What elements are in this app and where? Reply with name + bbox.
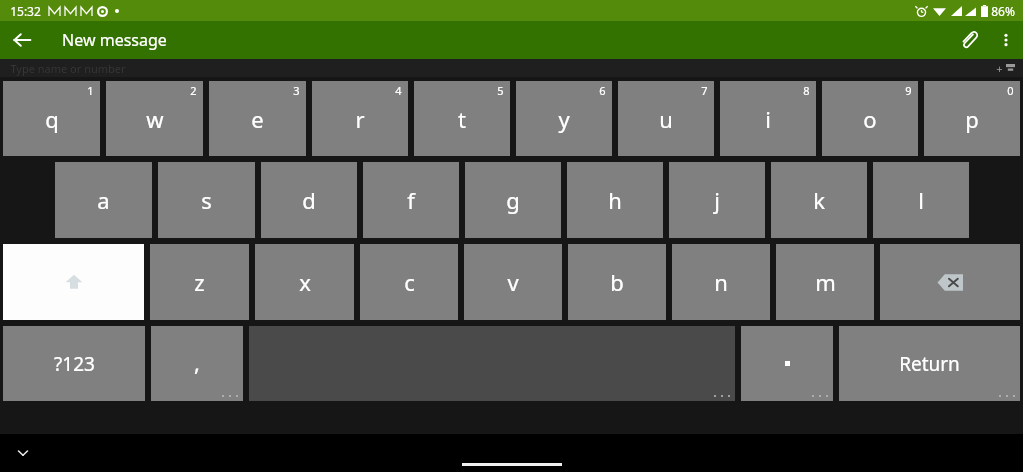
button[interactable]: Shift (3, 244, 144, 320)
button[interactable]: m (776, 244, 874, 320)
staticText: w (146, 104, 164, 134)
staticText: 6 (599, 83, 606, 98)
staticText: + (996, 61, 1003, 76)
button[interactable]: o (822, 81, 918, 156)
staticText: t (458, 104, 466, 134)
button[interactable]: Attach (949, 21, 989, 59)
button[interactable]: a (55, 162, 152, 238)
staticText: z (194, 267, 205, 297)
button[interactable]: k (771, 162, 867, 238)
staticText: 8 (803, 83, 810, 98)
button[interactable]: Backspace (880, 244, 1020, 320)
button[interactable]: c (360, 244, 458, 320)
button[interactable]: u (618, 81, 714, 156)
button[interactable]: Comma (151, 326, 243, 401)
button[interactable]: f (363, 162, 459, 238)
staticText: 7 (701, 83, 708, 98)
button[interactable]: h (567, 162, 663, 238)
staticText: q (45, 104, 59, 134)
staticText: m (815, 267, 836, 297)
staticText: p (965, 104, 979, 134)
staticText: 5 (497, 83, 504, 98)
staticText: s (201, 185, 212, 215)
staticText: a (97, 185, 110, 215)
staticText: c (404, 267, 415, 297)
staticText: d (302, 185, 316, 215)
staticText: e (251, 104, 264, 134)
button[interactable]: y (516, 81, 612, 156)
button[interactable]: l (873, 162, 969, 238)
staticText: Return (899, 351, 960, 377)
button[interactable]: Hide keyboard (6, 436, 40, 470)
button[interactable]: t (414, 81, 510, 156)
button[interactable]: v (464, 244, 562, 320)
button[interactable]: Return (839, 326, 1020, 401)
staticText: ?123 (54, 351, 95, 377)
staticText: 9 (905, 83, 912, 98)
staticText: k (813, 185, 825, 215)
staticText: v (507, 267, 519, 297)
staticText: 0 (1007, 83, 1014, 98)
staticText: l (918, 185, 924, 215)
staticText: 15:32 (10, 3, 41, 19)
staticText: f (407, 185, 415, 215)
staticText: 3 (293, 83, 300, 98)
button[interactable]: i (720, 81, 816, 156)
staticText: h (608, 185, 622, 215)
staticText: , (194, 347, 200, 377)
staticText: g (506, 185, 520, 215)
button[interactable]: x (255, 244, 354, 320)
button[interactable]: z (150, 244, 249, 320)
staticText: u (659, 104, 673, 134)
button[interactable]: j (669, 162, 765, 238)
button[interactable]: s (158, 162, 255, 238)
staticText: 1 (87, 83, 94, 98)
staticText: Type name or number (10, 61, 126, 76)
button[interactable]: g (465, 162, 561, 238)
button[interactable]: q (3, 81, 100, 156)
staticText: New message (62, 29, 167, 51)
button[interactable]: p (924, 81, 1020, 156)
staticText: r (355, 104, 365, 134)
button[interactable]: Back (0, 21, 44, 59)
button[interactable]: Period (741, 326, 833, 401)
button[interactable]: More options (989, 23, 1023, 57)
staticText: y (558, 104, 570, 134)
button[interactable]: w (106, 81, 203, 156)
staticText: x (299, 267, 311, 297)
staticText: j (714, 185, 720, 215)
staticText: 86% (991, 3, 1015, 19)
staticText: o (863, 104, 877, 134)
staticText: 2 (190, 83, 197, 98)
button[interactable]: n (672, 244, 770, 320)
button[interactable]: b (568, 244, 666, 320)
button[interactable]: e (209, 81, 306, 156)
button[interactable]: d (261, 162, 357, 238)
staticText: i (765, 104, 771, 134)
button[interactable]: ?123 (3, 326, 145, 401)
staticText: 4 (395, 83, 402, 98)
button[interactable]: r (312, 81, 408, 156)
staticText: b (610, 267, 624, 297)
staticText: n (714, 267, 728, 297)
